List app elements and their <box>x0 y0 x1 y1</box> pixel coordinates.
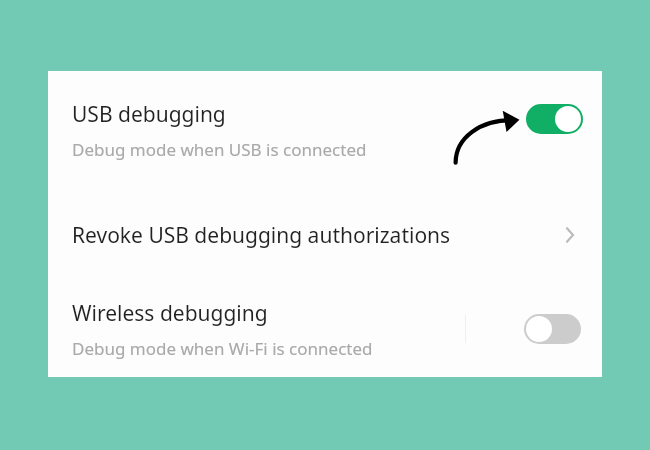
staticText: Revoke USB debugging authorizations <box>72 221 451 250</box>
button[interactable]: Toggle on <box>526 104 583 134</box>
staticText: Debug mode when USB is connected <box>72 138 367 161</box>
button[interactable]: USB debugging <box>48 71 602 189</box>
button[interactable]: Revoke USB debugging authorizations <box>48 189 602 281</box>
staticText: Wireless debugging <box>72 299 268 328</box>
staticText: Debug mode when Wi-Fi is connected <box>72 337 373 360</box>
staticText: USB debugging <box>72 100 226 129</box>
button[interactable]: Toggle off <box>524 314 581 344</box>
button[interactable]: Wireless debugging <box>48 281 602 377</box>
